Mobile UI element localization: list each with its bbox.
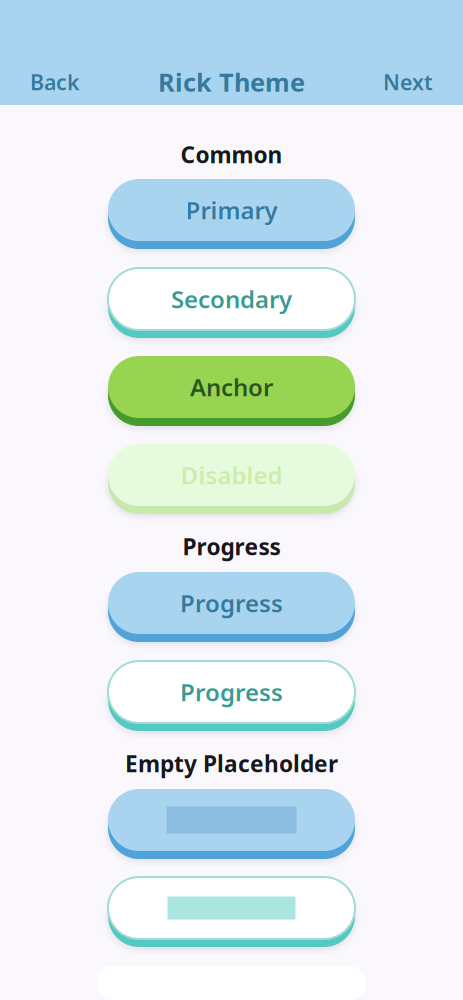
- staticText: Empty Placeholder: [125, 748, 338, 778]
- button[interactable]: Anchor: [108, 356, 355, 426]
- staticText: Secondary: [171, 283, 292, 315]
- staticText: Anchor: [190, 371, 273, 403]
- staticText: Progress: [180, 587, 283, 619]
- staticText: Progress: [180, 676, 283, 708]
- staticText: Progress: [182, 531, 280, 561]
- button[interactable]: Progress: [108, 661, 355, 731]
- button[interactable]: Loading: [108, 789, 355, 859]
- staticText: Disabled: [180, 459, 282, 491]
- button[interactable]: Back: [30, 66, 80, 98]
- staticText: Rick Theme: [158, 65, 305, 99]
- button[interactable]: Disabled: [108, 444, 355, 514]
- staticText: Back: [30, 68, 80, 96]
- button[interactable]: Progress: [108, 572, 355, 642]
- staticText: Primary: [185, 194, 277, 226]
- button[interactable]: Next: [383, 66, 433, 98]
- staticText: Common: [180, 139, 282, 169]
- button[interactable]: Loading: [108, 877, 355, 947]
- staticText: Next: [383, 68, 433, 96]
- button[interactable]: Primary: [108, 179, 355, 249]
- button[interactable]: Secondary: [108, 268, 355, 338]
